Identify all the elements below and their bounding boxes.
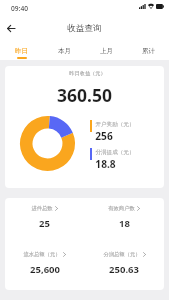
staticText: 250.63 bbox=[109, 263, 139, 276]
staticText: 分润提成（元） bbox=[95, 149, 135, 156]
button[interactable]: 分润总额（元） bbox=[84, 244, 164, 290]
button[interactable]: Back bbox=[2, 20, 19, 37]
staticText: 256 bbox=[95, 129, 113, 143]
staticText: 25 bbox=[39, 217, 50, 230]
staticText: 进件总数 bbox=[31, 205, 53, 212]
staticText: 上月 bbox=[100, 47, 113, 55]
staticText: 18 bbox=[119, 217, 130, 230]
staticText: 18.8 bbox=[95, 157, 116, 171]
staticText: 昨日收益（元） bbox=[69, 70, 106, 77]
staticText: 分润总额（元） bbox=[103, 251, 141, 258]
staticText: 流水总额（元） bbox=[23, 251, 61, 258]
staticText: 有效商户数 bbox=[108, 205, 135, 212]
staticText: 09:40 bbox=[11, 4, 28, 13]
button[interactable]: 流水总额（元） bbox=[5, 244, 84, 290]
staticText: 累计 bbox=[142, 47, 155, 55]
staticText: 开户奖励（元） bbox=[95, 121, 135, 128]
staticText: 昨日 bbox=[15, 47, 28, 55]
staticText: 360.50 bbox=[57, 83, 112, 107]
button[interactable]: 累计 bbox=[127, 44, 169, 60]
staticText: 本月 bbox=[58, 47, 71, 55]
staticText: 25,600 bbox=[30, 263, 60, 276]
button[interactable]: 有效商户数 bbox=[84, 198, 164, 244]
button[interactable]: 昨日 bbox=[0, 44, 43, 60]
staticText: 收益查询 bbox=[67, 23, 102, 34]
button[interactable]: 上月 bbox=[85, 44, 127, 60]
button[interactable]: 本月 bbox=[43, 44, 85, 60]
button[interactable]: 进件总数 bbox=[5, 198, 84, 244]
